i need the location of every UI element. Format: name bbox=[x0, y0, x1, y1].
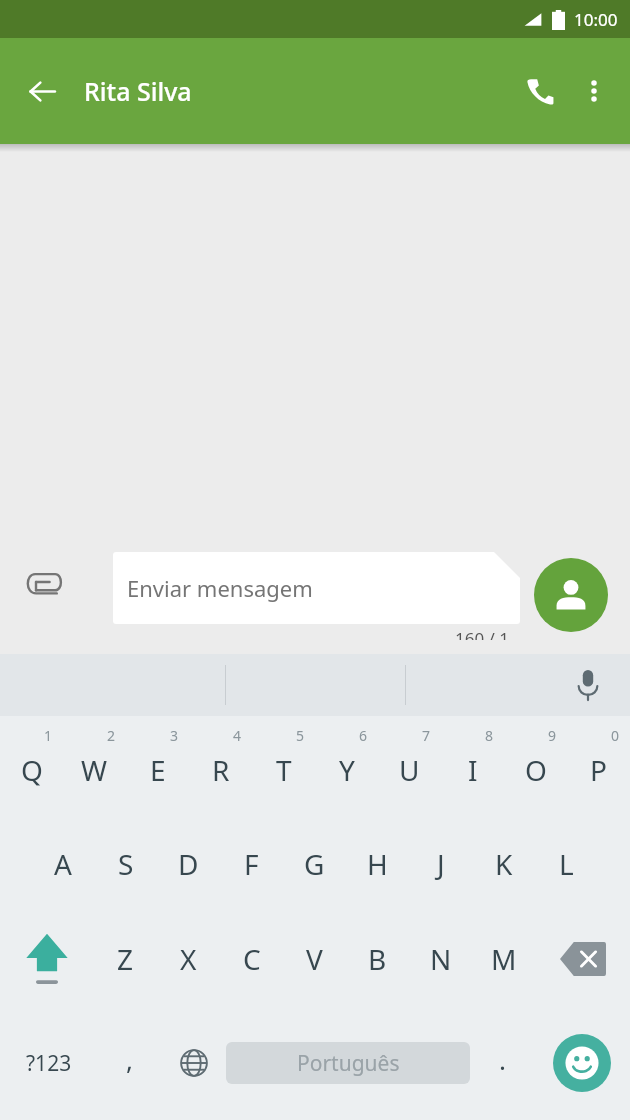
button[interactable]: Voice input bbox=[560, 657, 616, 713]
staticText: Y bbox=[339, 751, 355, 789]
staticText: 3 bbox=[170, 726, 179, 745]
button[interactable]: 1 bbox=[0, 716, 63, 816]
staticText: J bbox=[437, 845, 445, 883]
staticText: M bbox=[491, 940, 517, 978]
button[interactable]: Emoji bbox=[534, 1006, 630, 1120]
button[interactable]: Enviar mensagem bbox=[113, 552, 520, 624]
button[interactable]: K bbox=[472, 816, 535, 911]
button[interactable]: 9 bbox=[504, 716, 567, 816]
button[interactable]: J bbox=[409, 816, 472, 911]
button[interactable]: D bbox=[157, 816, 220, 911]
button[interactable]: G bbox=[283, 816, 346, 911]
button[interactable]: M bbox=[472, 911, 535, 1006]
button[interactable]: ?123 bbox=[0, 1006, 97, 1120]
button[interactable]: , bbox=[97, 1006, 162, 1120]
button[interactable]: Attach bbox=[14, 553, 74, 613]
button[interactable]: 0 bbox=[567, 716, 630, 816]
button[interactable]: H bbox=[346, 816, 409, 911]
staticText: G bbox=[304, 845, 325, 883]
button[interactable]: X bbox=[157, 911, 220, 1006]
staticText: 1 bbox=[44, 726, 53, 745]
staticText: R bbox=[212, 751, 230, 789]
staticText: F bbox=[244, 845, 259, 883]
staticText: L bbox=[559, 845, 574, 883]
staticText: Q bbox=[21, 751, 43, 789]
button[interactable]: Português bbox=[226, 1006, 470, 1120]
button[interactable]: V bbox=[283, 911, 346, 1006]
button[interactable]: Call bbox=[512, 63, 568, 119]
staticText: ?123 bbox=[26, 1049, 72, 1078]
staticText: 6 bbox=[359, 726, 368, 745]
button[interactable]: 2 bbox=[63, 716, 126, 816]
button[interactable]: 7 bbox=[378, 716, 441, 816]
button[interactable]: S bbox=[94, 816, 157, 911]
staticText: E bbox=[150, 751, 166, 789]
button[interactable]: . bbox=[470, 1006, 534, 1120]
staticText: H bbox=[367, 845, 388, 883]
staticText: S bbox=[118, 845, 134, 883]
button[interactable]: Backspace bbox=[535, 911, 630, 1006]
button[interactable]: Change language bbox=[162, 1006, 226, 1120]
button[interactable]: Rita Silva bbox=[84, 74, 512, 108]
button[interactable]: Send bbox=[534, 558, 608, 632]
staticText: 10:00 bbox=[574, 8, 618, 31]
button[interactable]: Back bbox=[16, 65, 68, 117]
staticText: P bbox=[590, 751, 607, 789]
button[interactable]: 8 bbox=[441, 716, 504, 816]
staticText: B bbox=[368, 940, 387, 978]
button[interactable]: 5 bbox=[252, 716, 315, 816]
staticText: T bbox=[276, 751, 292, 789]
button[interactable]: 3 bbox=[126, 716, 189, 816]
staticText: V bbox=[306, 940, 323, 978]
staticText: 0 bbox=[611, 726, 620, 745]
staticText: A bbox=[54, 845, 72, 883]
staticText: , bbox=[126, 1042, 133, 1077]
button[interactable]: 4 bbox=[189, 716, 252, 816]
staticText: 9 bbox=[548, 726, 557, 745]
staticText: N bbox=[430, 940, 452, 978]
button[interactable]: C bbox=[220, 911, 283, 1006]
staticText: 7 bbox=[422, 726, 431, 745]
staticText: O bbox=[525, 751, 547, 789]
staticText: K bbox=[495, 845, 513, 883]
staticText: 160 / 1 bbox=[455, 627, 510, 640]
staticText: Enviar mensagem bbox=[127, 573, 313, 603]
button[interactable]: A bbox=[31, 816, 94, 911]
staticText: U bbox=[399, 751, 420, 789]
staticText: X bbox=[180, 940, 197, 978]
staticText: 5 bbox=[296, 726, 305, 745]
button[interactable]: More options bbox=[568, 65, 620, 117]
button[interactable]: 6 bbox=[315, 716, 378, 816]
staticText: 2 bbox=[107, 726, 116, 745]
button[interactable]: B bbox=[346, 911, 409, 1006]
staticText: C bbox=[243, 940, 261, 978]
staticText: I bbox=[468, 751, 478, 789]
staticText: . bbox=[499, 1042, 506, 1077]
button[interactable]: Shift bbox=[0, 911, 94, 1006]
staticText: W bbox=[81, 751, 108, 789]
staticText: Z bbox=[117, 940, 134, 978]
button[interactable]: F bbox=[220, 816, 283, 911]
staticText: 4 bbox=[233, 726, 242, 745]
staticText: Português bbox=[297, 1049, 400, 1078]
button[interactable]: Z bbox=[94, 911, 157, 1006]
staticText: D bbox=[178, 845, 199, 883]
button[interactable]: N bbox=[409, 911, 472, 1006]
staticText: 8 bbox=[485, 726, 494, 745]
button[interactable]: L bbox=[535, 816, 598, 911]
